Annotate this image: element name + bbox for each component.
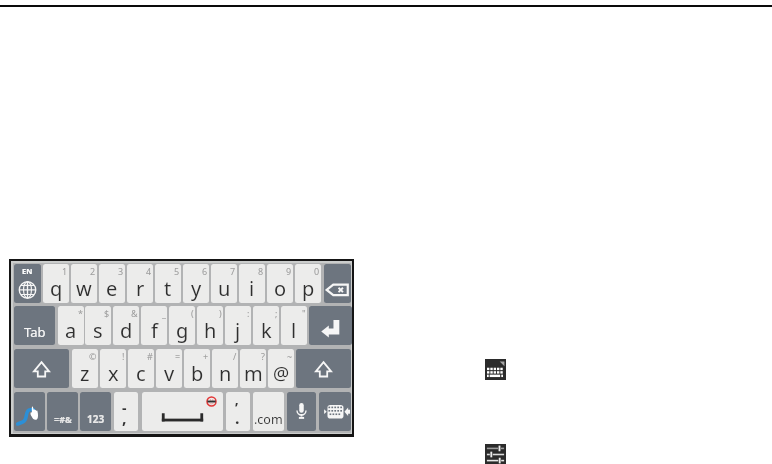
staticText: ( — [191, 307, 194, 319]
button[interactable]: s — [85, 306, 111, 345]
staticText: , — [122, 407, 127, 429]
staticText: q — [50, 275, 63, 302]
button[interactable]: Comma — [114, 392, 138, 431]
button[interactable]: Symbols — [47, 392, 78, 431]
staticText: 9 — [286, 265, 292, 277]
staticText: & — [131, 307, 138, 319]
staticText: m — [244, 360, 263, 387]
staticText: - — [122, 398, 127, 417]
staticText: .com — [254, 411, 283, 428]
button[interactable]: m — [240, 349, 266, 388]
staticText: Tab — [24, 323, 46, 341]
staticText: 1 — [62, 265, 68, 277]
button[interactable]: x — [100, 349, 126, 388]
button[interactable]: c — [128, 349, 154, 388]
staticText: i — [249, 275, 255, 302]
staticText: EN — [22, 266, 33, 276]
staticText: f — [151, 317, 158, 344]
button[interactable]: t — [155, 264, 181, 303]
staticText: b — [191, 360, 204, 387]
button[interactable]: @ — [268, 349, 294, 388]
staticText: = — [175, 350, 181, 362]
button[interactable]: j — [225, 306, 251, 345]
button[interactable]: Voice input — [287, 392, 316, 431]
staticText: © — [89, 350, 97, 362]
staticText: u — [218, 275, 231, 302]
button[interactable]: z — [72, 349, 98, 388]
staticText: a — [65, 317, 77, 344]
button[interactable]: p — [295, 264, 321, 303]
button[interactable]: f — [141, 306, 167, 345]
button[interactable]: n — [212, 349, 238, 388]
staticText: 7 — [230, 265, 236, 277]
staticText: h — [204, 317, 217, 344]
staticText: t — [164, 275, 172, 302]
button[interactable]: h — [197, 306, 223, 345]
button[interactable]: d — [113, 306, 139, 345]
staticText: " — [302, 307, 306, 319]
staticText: x — [108, 360, 119, 387]
button[interactable]: Shift — [14, 349, 69, 388]
button[interactable]: b — [184, 349, 210, 388]
button[interactable]: a — [58, 306, 84, 345]
staticText: e — [106, 275, 118, 302]
staticText: w — [76, 275, 92, 302]
button[interactable]: q — [43, 264, 69, 303]
button[interactable]: Enter — [309, 306, 352, 345]
staticText: : — [247, 307, 250, 319]
staticText: ? — [261, 350, 265, 362]
button[interactable]: u — [211, 264, 237, 303]
staticText: / — [233, 350, 237, 362]
staticText: 3 — [118, 265, 124, 277]
button[interactable]: Backspace — [324, 264, 351, 303]
staticText: r — [136, 275, 145, 302]
button[interactable]: Language — [14, 264, 41, 303]
staticText: j — [235, 317, 241, 344]
staticText: s — [93, 317, 103, 344]
staticText: n — [219, 360, 232, 387]
staticText: d — [120, 317, 133, 344]
button[interactable]: o — [267, 264, 293, 303]
staticText: ; — [275, 307, 278, 319]
staticText: 4 — [146, 265, 152, 277]
staticText: ) — [219, 307, 222, 319]
button[interactable]: .com — [253, 392, 284, 431]
button[interactable]: v — [156, 349, 182, 388]
button[interactable]: g — [169, 306, 195, 345]
button[interactable]: Period — [226, 392, 250, 431]
staticText: 0 — [314, 265, 320, 277]
staticText: 6 — [202, 265, 208, 277]
button[interactable]: Shift — [296, 349, 351, 388]
staticText: 2 — [90, 265, 96, 277]
staticText: 123 — [87, 412, 105, 426]
button[interactable]: Keyboard — [485, 359, 506, 380]
button[interactable]: l — [281, 306, 307, 345]
staticText: ’ — [235, 398, 239, 417]
button[interactable]: Handwriting — [14, 392, 45, 431]
staticText: o — [274, 275, 287, 302]
staticText: ~ — [287, 350, 293, 362]
staticText: p — [302, 275, 315, 302]
button[interactable]: Numbers — [80, 392, 111, 431]
button[interactable]: w — [71, 264, 97, 303]
staticText: + — [203, 350, 209, 362]
button[interactable]: e — [99, 264, 125, 303]
staticText: * — [78, 307, 83, 319]
staticText: k — [261, 317, 272, 344]
button[interactable]: i — [239, 264, 265, 303]
staticText: l — [291, 317, 297, 344]
staticText: 8 — [258, 265, 264, 277]
button[interactable]: Hide keyboard — [319, 392, 351, 431]
button[interactable]: r — [127, 264, 153, 303]
staticText: g — [176, 317, 189, 344]
staticText: . — [235, 407, 240, 429]
button[interactable]: y — [183, 264, 209, 303]
staticText: c — [136, 360, 146, 387]
button[interactable]: Tab — [14, 306, 55, 345]
staticText: 5 — [174, 265, 180, 277]
staticText: # — [147, 350, 153, 362]
button[interactable]: Space — [142, 392, 223, 431]
button[interactable]: k — [253, 306, 279, 345]
button[interactable]: Settings — [485, 444, 506, 464]
staticText: v — [164, 360, 175, 387]
